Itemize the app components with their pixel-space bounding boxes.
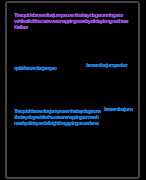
staticText: Hellow bbox=[14, 23, 28, 30]
staticText: while all of the cats were napping nearb… bbox=[14, 17, 128, 24]
staticText: quick brown fox jumpso bbox=[14, 65, 56, 72]
staticText: brown fox jum bbox=[104, 105, 133, 112]
staticText: Hellow bbox=[14, 23, 28, 30]
staticText: nearby all day and all night long going … bbox=[14, 120, 98, 127]
staticText: The quick brown fox jumps over the lazy … bbox=[14, 108, 101, 115]
staticText: brown fox jum bbox=[104, 105, 133, 112]
staticText: The quick brown fox jumps over the lazy … bbox=[14, 108, 101, 115]
staticText: the lazy dogs while the cats are napping… bbox=[14, 114, 99, 121]
staticText: The quick brown fox jumps over the lazy … bbox=[14, 11, 123, 18]
staticText: brown fox jumped ov bbox=[86, 61, 127, 68]
staticText: nearby all day and all night long going … bbox=[14, 120, 98, 127]
staticText: quick brown fox jumpso bbox=[14, 65, 56, 72]
staticText: The quick brown fox jumps over the lazy … bbox=[14, 11, 123, 18]
staticText: while all of the cats were napping nearb… bbox=[14, 17, 128, 24]
staticText: brown fox jumped ov bbox=[86, 61, 127, 68]
staticText: the lazy dogs while the cats are napping… bbox=[14, 114, 99, 121]
